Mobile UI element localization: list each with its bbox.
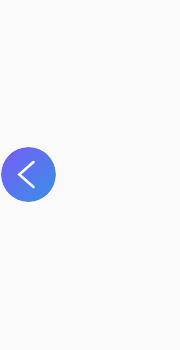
button[interactable]: Back: [1, 147, 56, 202]
